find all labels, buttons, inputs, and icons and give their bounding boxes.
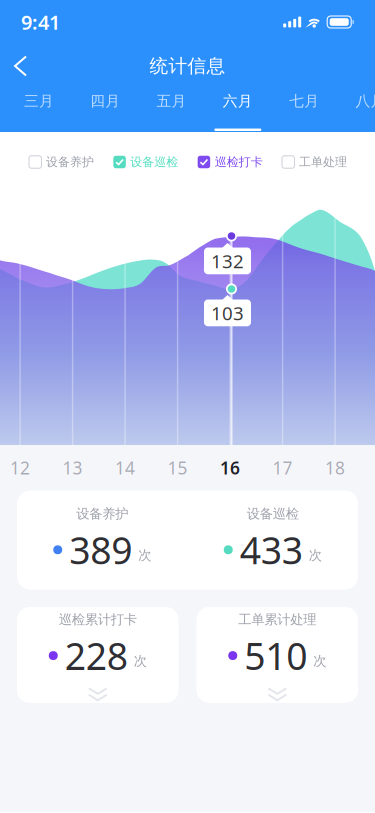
button[interactable]: 六月 [205,88,271,132]
staticText: 510 [244,631,307,680]
staticText: 16 [220,456,240,479]
button[interactable]: 工单累计处理 [196,607,358,703]
button[interactable]: 设备养护 [29,153,94,171]
staticText: 设备巡检 [130,155,178,169]
staticText: 六月 [223,92,253,110]
staticText: 次 [313,653,326,669]
button[interactable]: 巡检累计打卡 [17,607,178,703]
button[interactable]: 设备巡检 [187,506,358,575]
staticText: 次 [309,547,322,563]
staticText: 433 [240,525,303,575]
staticText: 设备巡检 [247,506,299,522]
staticText: 132 [211,248,244,273]
staticText: 巡检累计打卡 [59,611,137,628]
staticText: 次 [138,547,151,563]
staticText: 巡检打卡 [215,155,263,169]
staticText: 三月 [24,92,54,110]
staticText: 八月 [355,92,375,110]
staticText: 五月 [156,92,186,110]
staticText: 工单处理 [299,155,347,169]
staticText: 228 [65,631,128,680]
staticText: 14 [115,456,135,479]
button[interactable]: 八月 [337,88,375,132]
staticText: 次 [134,653,147,669]
button[interactable]: 设备养护 [17,506,187,575]
staticText: 四月 [90,92,120,110]
button[interactable]: Back [0,44,43,88]
button[interactable]: 五月 [138,88,205,132]
button[interactable]: 巡检打卡 [198,153,263,171]
button[interactable]: 四月 [72,88,138,132]
staticText: 12 [10,456,30,479]
staticText: 13 [62,456,82,479]
staticText: 15 [167,456,187,479]
staticText: 设备养护 [46,155,94,169]
staticText: 统计信息 [149,54,225,77]
button[interactable]: 七月 [271,88,337,132]
staticText: 389 [69,525,132,575]
staticText: 17 [272,456,292,479]
staticText: 103 [211,300,244,325]
staticText: 七月 [289,92,319,110]
staticText: 设备养护 [76,506,128,522]
staticText: 9:41 [21,9,60,35]
button[interactable]: 设备巡检 [113,153,178,171]
staticText: 18 [325,456,345,479]
button[interactable]: 工单处理 [282,153,347,171]
button[interactable]: 三月 [6,88,72,132]
staticText: 工单累计处理 [238,611,316,628]
